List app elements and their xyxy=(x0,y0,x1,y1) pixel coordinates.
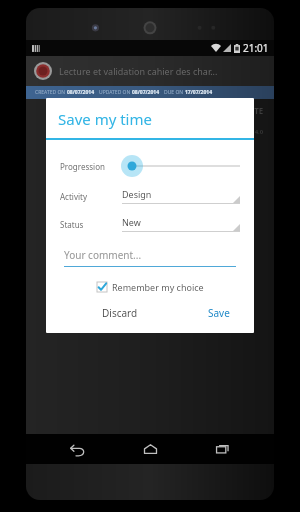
button[interactable]: Status spinner xyxy=(122,216,240,232)
staticText: Remember my choice xyxy=(112,281,204,293)
button[interactable]: Progression slider xyxy=(122,154,240,178)
staticText: 08/07/2014 xyxy=(67,89,95,96)
button[interactable]: Discard xyxy=(92,303,148,323)
staticText: Save xyxy=(208,306,230,320)
button[interactable]: Save xyxy=(198,303,240,323)
button[interactable]: Your comment... xyxy=(64,248,236,267)
button[interactable]: Lecture et validation cahier des char... xyxy=(26,56,274,86)
button[interactable]: Activity spinner xyxy=(122,188,240,204)
staticText: 21:01 xyxy=(243,41,269,55)
button[interactable]: Remember my choice xyxy=(46,281,254,293)
staticText: New xyxy=(122,216,141,228)
staticText: Progression xyxy=(60,161,105,172)
staticText: Your comment... xyxy=(64,248,142,262)
staticText: AVANT-VENTE xyxy=(209,105,264,116)
button[interactable]: Home xyxy=(128,434,172,464)
staticText: Status xyxy=(60,219,84,230)
staticText: Design xyxy=(122,188,152,200)
staticText: Discard xyxy=(102,306,138,320)
staticText: Save my time xyxy=(58,109,152,129)
staticText: 08/07/2014 xyxy=(132,89,160,96)
staticText: EST. TIME : 4.0 xyxy=(222,128,264,136)
staticText: 0 xyxy=(57,109,63,121)
button[interactable]: Recent apps xyxy=(201,434,245,464)
button[interactable]: Back xyxy=(55,434,99,464)
staticText: Activity xyxy=(60,191,87,202)
staticText: UPDATED ON xyxy=(99,89,132,96)
staticText: CREATED ON xyxy=(35,89,67,96)
staticText: 17/07/2014 xyxy=(185,89,213,96)
staticText: Lecture et validation cahier des char... xyxy=(59,65,218,77)
staticText: DUE ON xyxy=(164,89,185,96)
